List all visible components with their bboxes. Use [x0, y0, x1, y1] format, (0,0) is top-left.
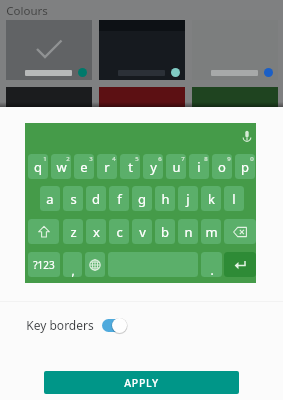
staticText: a — [46, 190, 54, 208]
button[interactable] — [192, 20, 278, 80]
staticText: 6 — [158, 155, 162, 163]
button[interactable]: u — [166, 154, 186, 179]
staticText: t — [128, 158, 133, 176]
button[interactable] — [99, 20, 185, 80]
staticText: p — [241, 158, 249, 176]
staticText: . — [210, 262, 214, 277]
button[interactable]: l — [224, 186, 244, 211]
button[interactable]: APPLY — [44, 371, 239, 394]
button[interactable]: f — [109, 186, 129, 211]
staticText: 8 — [204, 155, 208, 163]
staticText: l — [232, 190, 236, 208]
button[interactable]: c — [109, 219, 129, 244]
button[interactable]: Shift — [28, 219, 59, 244]
staticText: g — [138, 190, 146, 208]
button[interactable]: i — [189, 154, 209, 179]
button[interactable]: w — [51, 154, 71, 179]
button[interactable]: . — [201, 252, 222, 277]
staticText: APPLY — [124, 376, 159, 390]
button[interactable]: s — [63, 186, 83, 211]
button[interactable]: e — [74, 154, 94, 179]
staticText: c — [116, 223, 123, 241]
staticText: , — [71, 262, 75, 277]
staticText: v — [139, 223, 146, 241]
staticText: 9 — [227, 155, 231, 163]
button[interactable] — [99, 87, 185, 147]
staticText: ?123 — [33, 258, 55, 272]
other: Voice input — [238, 127, 256, 145]
button[interactable]: v — [132, 219, 152, 244]
button[interactable]: Backspace — [224, 219, 256, 244]
staticText: j — [186, 190, 190, 208]
button[interactable]: m — [201, 219, 221, 244]
button[interactable]: y — [143, 154, 163, 179]
staticText: 2 — [66, 155, 70, 163]
button[interactable]: p — [235, 154, 255, 179]
staticText: z — [70, 223, 77, 241]
staticText: y — [150, 158, 157, 176]
staticText: 3 — [89, 155, 93, 163]
staticText: o — [218, 158, 226, 176]
staticText: k — [208, 190, 215, 208]
button[interactable]: d — [86, 186, 106, 211]
staticText: 7 — [181, 155, 185, 163]
button[interactable]: Key borders — [0, 305, 283, 345]
button[interactable]: r — [97, 154, 117, 179]
button[interactable]: q — [28, 154, 48, 179]
staticText: n — [184, 223, 193, 241]
staticText: 0 — [250, 155, 254, 163]
staticText: i — [197, 158, 201, 176]
staticText: q — [34, 158, 42, 176]
button[interactable]: Change language — [85, 252, 105, 277]
staticText: h — [161, 190, 170, 208]
button[interactable]: , — [63, 252, 82, 277]
staticText: e — [80, 158, 88, 176]
button[interactable]: b — [155, 219, 175, 244]
staticText: u — [172, 158, 181, 176]
staticText: m — [205, 223, 218, 241]
staticText: s — [70, 190, 77, 208]
staticText: 4 — [112, 155, 116, 163]
staticText: 5 — [135, 155, 139, 163]
button[interactable] — [6, 87, 92, 147]
button[interactable]: g — [132, 186, 152, 211]
staticText: 1 — [43, 155, 47, 163]
staticText: w — [56, 158, 67, 176]
staticText: b — [161, 223, 169, 241]
staticText: x — [93, 223, 100, 241]
button[interactable] — [192, 87, 278, 147]
button[interactable]: h — [155, 186, 175, 211]
button[interactable]: t — [120, 154, 140, 179]
button[interactable]: ?123 — [28, 252, 60, 277]
button[interactable]: k — [201, 186, 221, 211]
staticText: f — [117, 190, 122, 208]
staticText: Colours — [6, 3, 48, 19]
staticText: r — [104, 158, 110, 176]
button[interactable]: Enter — [224, 252, 256, 277]
button[interactable]: j — [178, 186, 198, 211]
button[interactable] — [6, 20, 92, 80]
staticText: Key borders — [26, 317, 94, 333]
button[interactable]: a — [40, 186, 60, 211]
staticText: d — [92, 190, 100, 208]
button[interactable]: o — [212, 154, 232, 179]
button[interactable]: n — [178, 219, 198, 244]
button[interactable]: x — [86, 219, 106, 244]
button[interactable]: z — [63, 219, 83, 244]
